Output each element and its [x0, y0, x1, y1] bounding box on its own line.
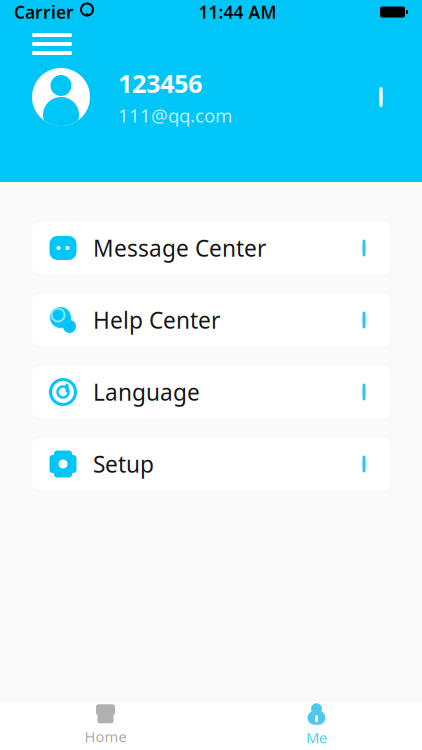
button[interactable]: Me [211, 700, 422, 750]
staticText: Message Center [93, 233, 266, 263]
button[interactable]: Message Center [32, 222, 390, 274]
staticText: Me [306, 728, 327, 747]
staticText: 111@qq.com [118, 103, 232, 128]
button[interactable]: Language [32, 366, 390, 418]
staticText: Home [84, 727, 126, 746]
button[interactable]: Menu [26, 27, 78, 61]
staticText: 123456 [118, 66, 202, 100]
staticText: Setup [93, 449, 154, 479]
staticText: Language [93, 377, 200, 407]
button[interactable]: Help Center [32, 294, 390, 346]
staticText: 11:44 AM [198, 0, 276, 23]
staticText: Help Center [93, 305, 220, 335]
staticText: Carrier [14, 0, 74, 23]
button[interactable]: 123456 [0, 64, 422, 130]
button[interactable]: Home [0, 700, 211, 750]
button[interactable]: Setup [32, 438, 390, 490]
